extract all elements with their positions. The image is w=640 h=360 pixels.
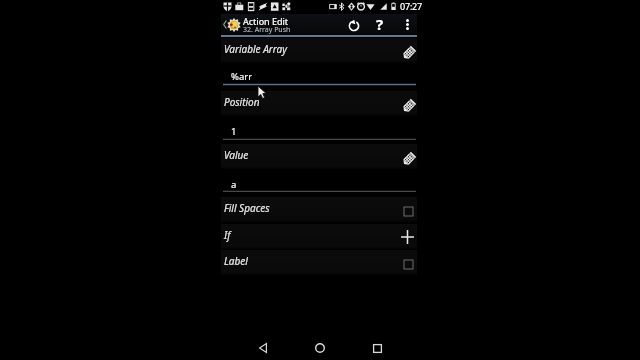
staticText: Value	[224, 148, 249, 162]
staticText: 1	[231, 125, 237, 138]
staticText: Action Edit	[243, 15, 289, 27]
staticText: ?	[376, 14, 384, 34]
button[interactable]: Home	[306, 334, 334, 360]
button[interactable]: More options	[397, 14, 417, 35]
button[interactable]: Undo	[341, 14, 367, 35]
staticText: Fill Spaces	[224, 201, 270, 215]
button[interactable]: If	[221, 224, 417, 249]
button[interactable]: Edit Variable Array	[399, 43, 419, 63]
button[interactable]: Label checkbox	[401, 257, 415, 271]
button[interactable]: Fill Spaces	[221, 197, 417, 222]
button[interactable]: Edit Value	[399, 149, 419, 169]
staticText: Position	[224, 95, 260, 109]
button[interactable]: %arr	[221, 64, 417, 86]
button[interactable]: Value	[221, 144, 417, 169]
button[interactable]: Edit Position	[399, 96, 419, 116]
button[interactable]: Back	[249, 334, 277, 360]
staticText: Variable Array	[224, 42, 287, 56]
staticText: 07:27	[400, 0, 423, 12]
button[interactable]: Fill Spaces checkbox	[401, 204, 415, 218]
button[interactable]: a	[221, 172, 417, 193]
button[interactable]: Help	[368, 13, 392, 34]
button[interactable]: Navigate up	[221, 14, 228, 35]
staticText: %arr	[231, 70, 253, 83]
staticText: 32. Array Push	[243, 25, 291, 35]
staticText: a	[231, 178, 237, 191]
staticText: Label	[224, 254, 248, 268]
button[interactable]: Variable Array	[221, 38, 417, 63]
button[interactable]: Add condition	[398, 228, 416, 246]
button[interactable]: Label	[221, 250, 417, 275]
button[interactable]: Position	[221, 91, 417, 116]
button[interactable]: 1	[221, 119, 417, 141]
button[interactable]: Recents	[363, 334, 391, 360]
staticText: If	[224, 228, 231, 242]
